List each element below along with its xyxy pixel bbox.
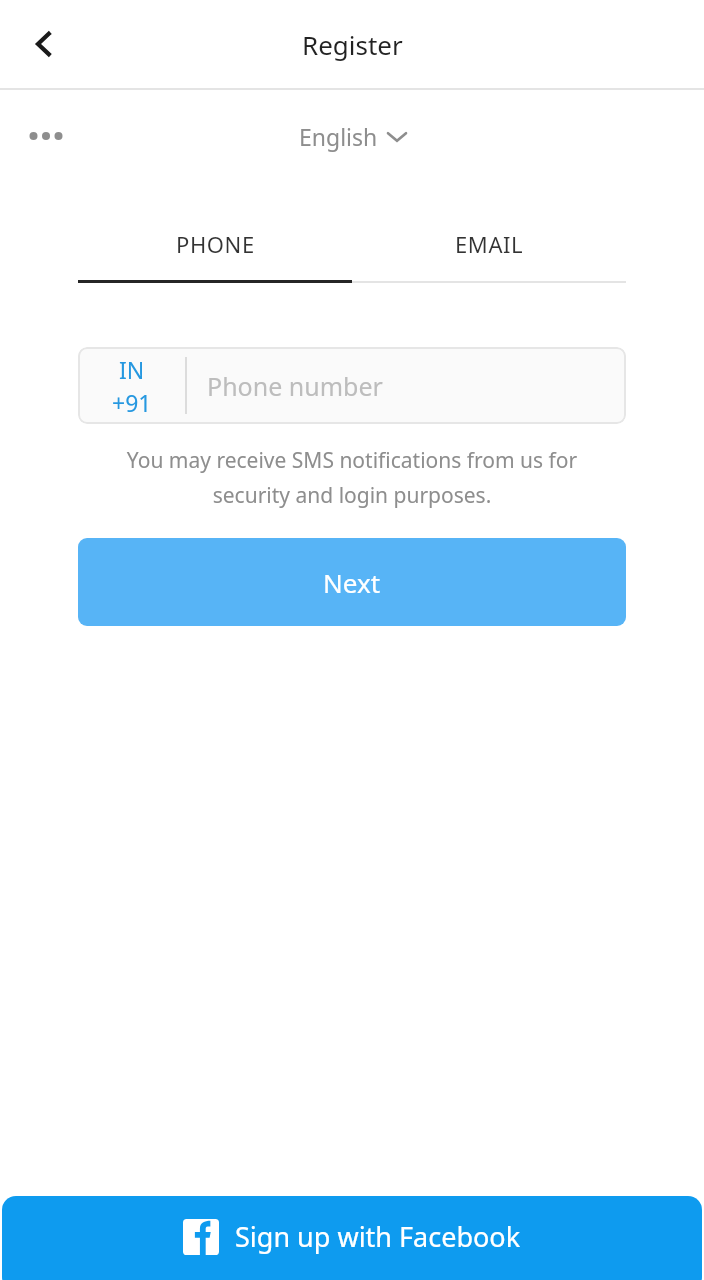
button[interactable]: EMAIL — [352, 208, 626, 280]
staticText: EMAIL — [455, 229, 524, 259]
button[interactable]: PHONE — [78, 208, 352, 280]
staticText: +91 — [112, 387, 152, 418]
button[interactable]: Next — [78, 538, 626, 626]
staticText: English — [299, 121, 378, 152]
staticText: You may receive SMS notifications from u… — [92, 446, 612, 510]
button[interactable]: IN — [78, 347, 185, 424]
staticText: Phone number — [207, 369, 383, 403]
staticText: Register — [302, 27, 403, 62]
button[interactable]: Back — [0, 0, 88, 88]
staticText: PHONE — [176, 229, 255, 259]
staticText: Sign up with Facebook — [235, 1218, 521, 1255]
button[interactable]: English — [291, 115, 414, 158]
button[interactable]: Phone number — [187, 347, 626, 424]
staticText: Next — [323, 565, 381, 600]
button[interactable]: Sign up with Facebook — [2, 1196, 702, 1280]
staticText: IN — [119, 354, 145, 385]
button[interactable]: More options — [12, 102, 80, 170]
